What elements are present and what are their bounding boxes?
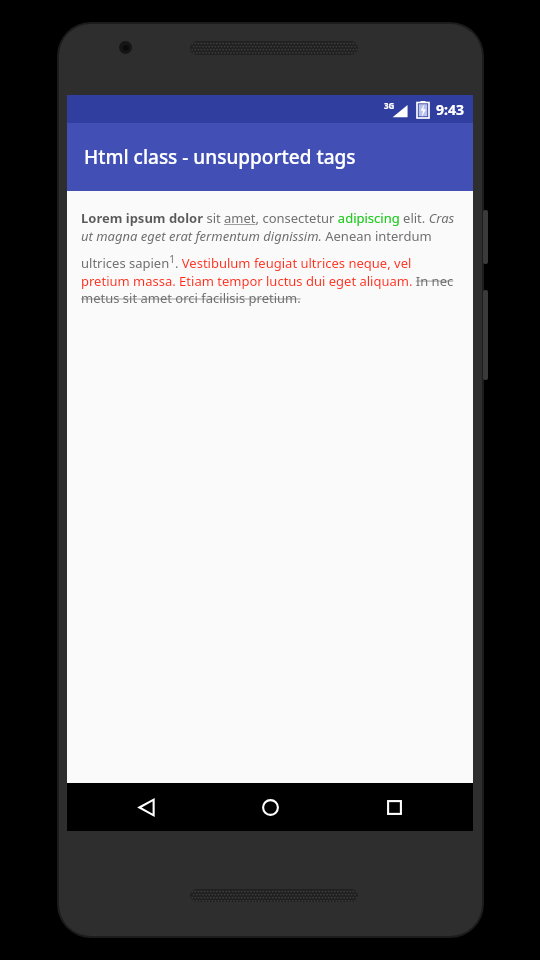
button[interactable]: Html class - unsupported tags [67, 123, 473, 191]
staticText: Html class - unsupported tags [84, 144, 356, 170]
staticText: 9:43 [436, 100, 464, 119]
button[interactable]: Recent apps [349, 783, 439, 831]
staticText: 3G [384, 100, 395, 111]
staticText: Lorem ipsum dolor sit amet, consectetur … [81, 209, 459, 307]
button[interactable]: Home [225, 783, 315, 831]
button[interactable]: Back [101, 783, 191, 831]
